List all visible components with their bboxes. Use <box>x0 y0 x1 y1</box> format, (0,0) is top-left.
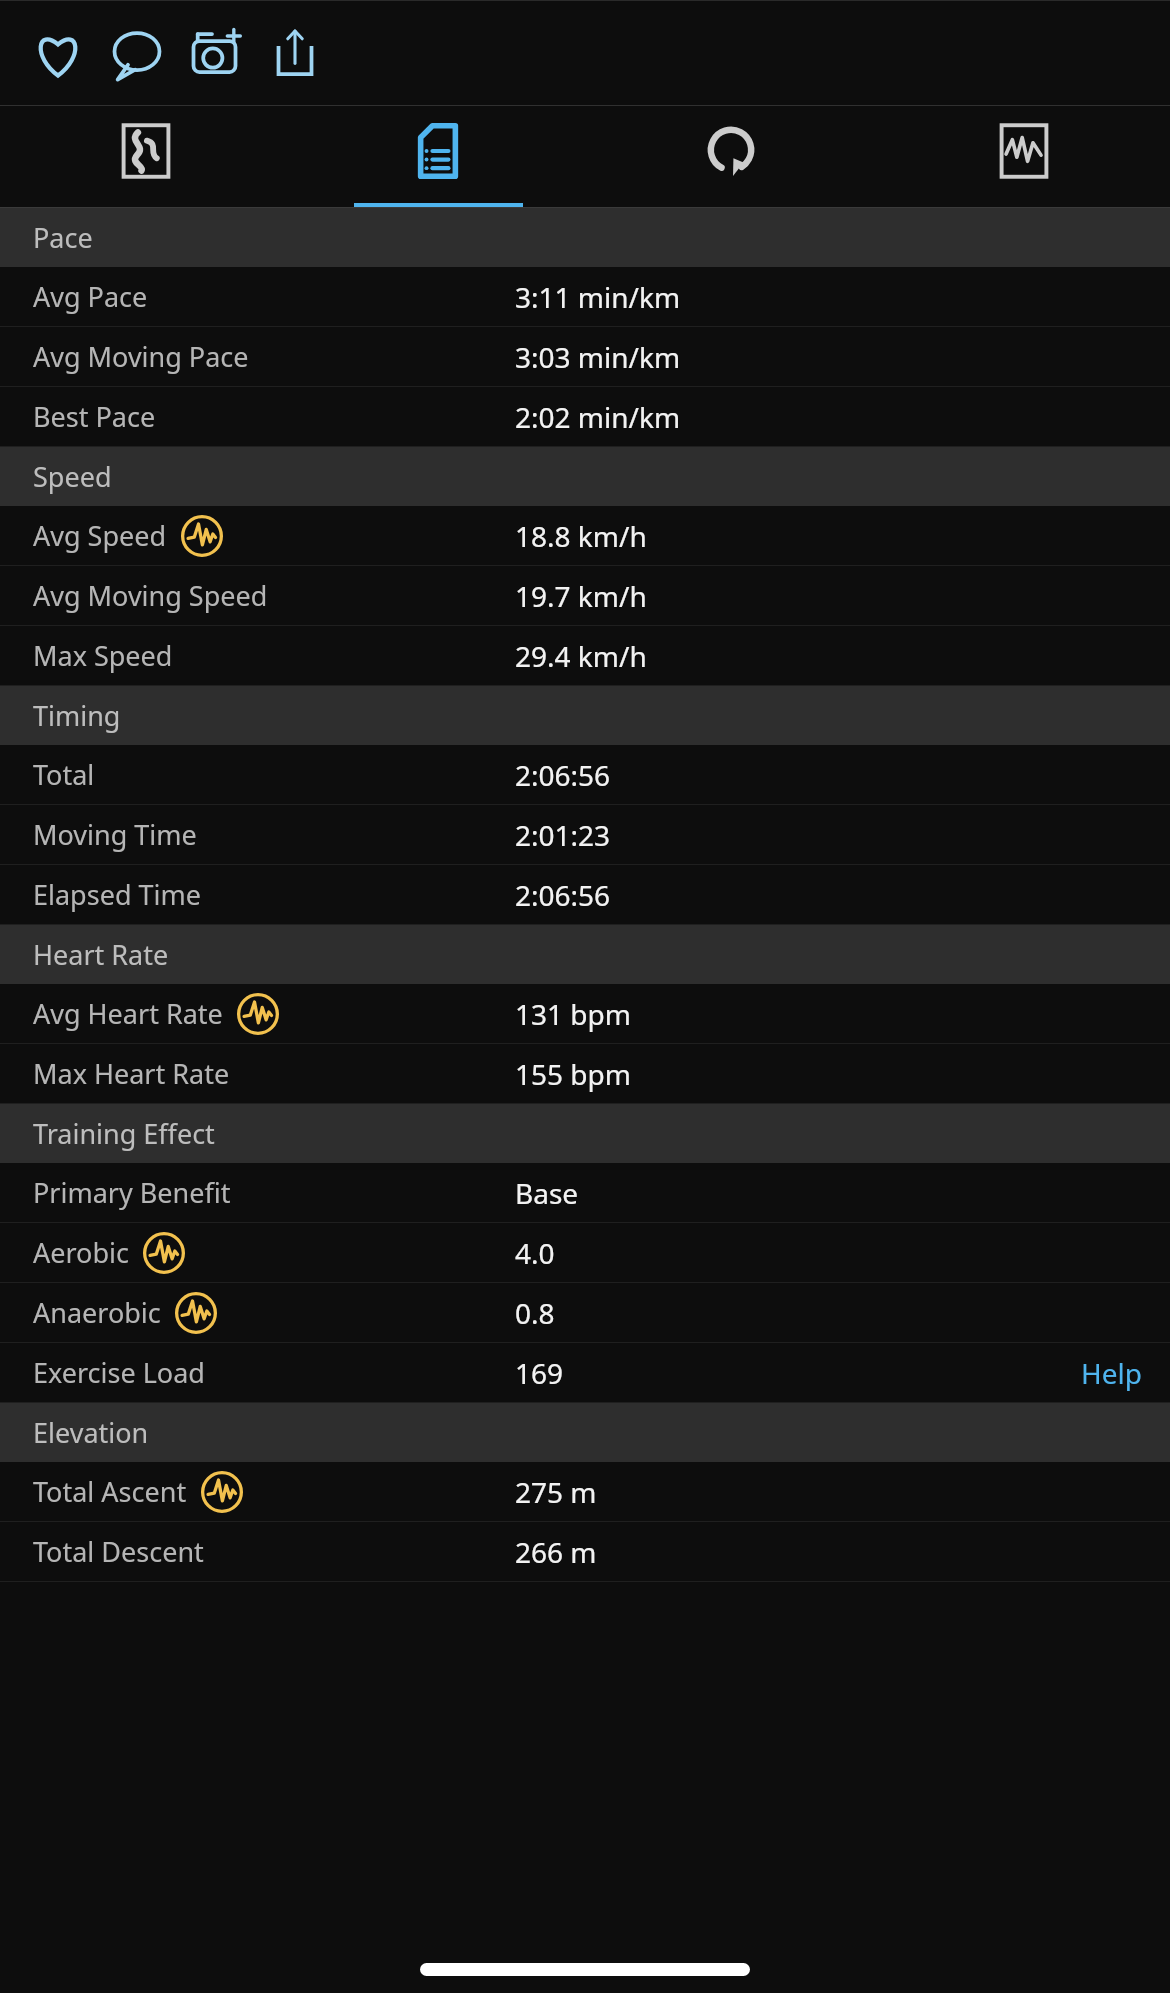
staticText: Avg Pace <box>33 278 148 315</box>
button[interactable]: Best Pace <box>0 387 1170 446</box>
staticText: Elevation <box>33 1414 149 1451</box>
staticText: Elapsed Time <box>33 876 201 913</box>
button[interactable]: Total Descent <box>0 1522 1170 1581</box>
button[interactable]: Laps <box>584 106 877 208</box>
staticText: Avg Heart Rate <box>33 995 223 1032</box>
staticText: Timing <box>33 697 121 734</box>
staticText: Max Heart Rate <box>33 1055 230 1092</box>
staticText: Speed <box>33 458 112 495</box>
button[interactable]: Exercise Load <box>0 1343 1170 1402</box>
button[interactable]: Max Speed <box>0 626 1170 685</box>
button[interactable]: Like <box>18 0 97 106</box>
staticText: 29.4 km/h <box>515 637 647 675</box>
button[interactable]: Total Ascent <box>0 1462 1170 1521</box>
staticText: Avg Speed <box>33 517 167 554</box>
staticText: 275 m <box>515 1473 597 1511</box>
staticText: Training Effect <box>33 1115 215 1152</box>
staticText: Aerobic <box>33 1234 129 1271</box>
staticText: 131 bpm <box>515 995 631 1033</box>
staticText: 3:11 min/km <box>515 278 681 316</box>
button[interactable]: Moving Time <box>0 805 1170 864</box>
button[interactable]: Share <box>255 0 334 106</box>
button[interactable]: Comment <box>97 0 176 106</box>
staticText: 266 m <box>515 1533 597 1571</box>
button[interactable]: Aerobic <box>0 1223 1170 1282</box>
staticText: Best Pace <box>33 398 156 435</box>
button[interactable]: Avg Pace <box>0 267 1170 326</box>
button[interactable]: Avg Moving Speed <box>0 566 1170 625</box>
staticText: Pace <box>33 219 93 256</box>
staticText: Max Speed <box>33 637 173 674</box>
button[interactable]: Add photo <box>176 0 255 106</box>
staticText: Primary Benefit <box>33 1174 231 1211</box>
staticText: 2:01:23 <box>515 816 611 854</box>
button[interactable]: Primary Benefit <box>0 1163 1170 1222</box>
staticText: Avg Moving Speed <box>33 577 268 614</box>
button[interactable]: Max Heart Rate <box>0 1044 1170 1103</box>
button[interactable]: Avg Speed <box>0 506 1170 565</box>
button[interactable]: Map <box>0 106 292 208</box>
button[interactable]: Elapsed Time <box>0 865 1170 924</box>
staticText: 19.7 km/h <box>515 577 647 615</box>
staticText: Heart Rate <box>33 936 169 973</box>
staticText: 0.8 <box>515 1294 555 1332</box>
button[interactable]: Avg Heart Rate <box>0 984 1170 1043</box>
staticText: 3:03 min/km <box>515 338 681 376</box>
staticText: Moving Time <box>33 816 197 853</box>
staticText: 2:02 min/km <box>515 398 681 436</box>
staticText: Help <box>1081 1354 1142 1392</box>
staticText: 4.0 <box>515 1234 555 1272</box>
button[interactable]: Help <box>1053 1343 1170 1402</box>
staticText: 169 <box>515 1354 564 1392</box>
staticText: Exercise Load <box>33 1354 205 1391</box>
staticText: Anaerobic <box>33 1294 161 1331</box>
staticText: Total Ascent <box>33 1473 187 1510</box>
staticText: Total <box>33 756 95 793</box>
staticText: 2:06:56 <box>515 756 611 794</box>
staticText: 18.8 km/h <box>515 517 647 555</box>
button[interactable]: Details <box>292 106 584 208</box>
staticText: 155 bpm <box>515 1055 631 1093</box>
button[interactable]: Avg Moving Pace <box>0 327 1170 386</box>
staticText: Base <box>515 1174 579 1212</box>
button[interactable]: Total <box>0 745 1170 804</box>
staticText: Avg Moving Pace <box>33 338 249 375</box>
button[interactable]: Graphs <box>877 106 1170 208</box>
staticText: 2:06:56 <box>515 876 611 914</box>
button[interactable]: Anaerobic <box>0 1283 1170 1342</box>
staticText: Total Descent <box>33 1533 204 1570</box>
